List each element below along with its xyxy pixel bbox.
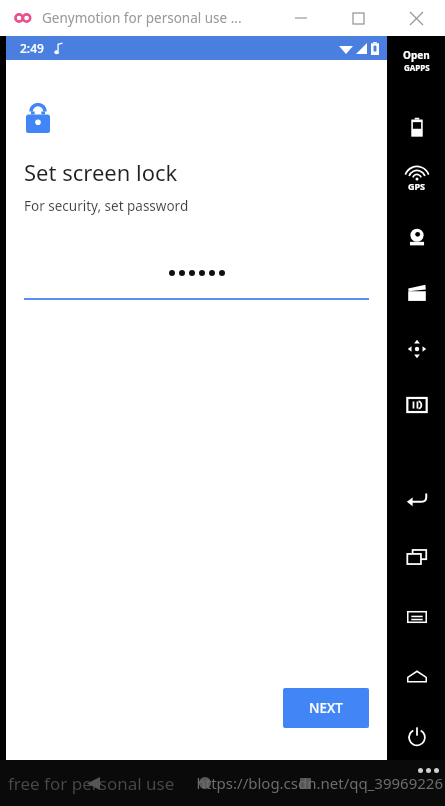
staticText: Open [403, 48, 430, 62]
staticText: GPS [408, 180, 426, 192]
button[interactable]: Maximize [329, 0, 387, 36]
button[interactable]: Battery [400, 110, 434, 144]
staticText: 2:49 [20, 40, 44, 56]
button[interactable]: Camera [400, 220, 434, 254]
staticText: Genymotion for personal use ... [42, 9, 242, 27]
button[interactable]: Back [78, 768, 108, 798]
staticText: For security, set password [24, 197, 189, 215]
button[interactable]: Identifiers [400, 388, 434, 422]
button[interactable]: Close [387, 0, 445, 36]
staticText: https://blog.csdn.net/qq_39969226 [196, 773, 443, 793]
button[interactable]: Move [400, 332, 434, 366]
button[interactable]: Back [400, 480, 434, 514]
button[interactable] [24, 259, 369, 300]
button[interactable]: Home [190, 768, 220, 798]
button[interactable]: Recents [290, 768, 320, 798]
button[interactable]: Recents [400, 540, 434, 574]
staticText: NEXT [309, 699, 343, 717]
staticText: free for personal use [8, 772, 175, 795]
button[interactable]: Power [400, 720, 434, 754]
button[interactable]: NEXT [283, 688, 369, 728]
button[interactable]: GPS [407, 166, 427, 200]
button[interactable]: Record video [400, 276, 434, 310]
staticText: GAPPS [404, 62, 430, 73]
button[interactable]: Minimize [273, 0, 329, 36]
button[interactable]: Menu [400, 600, 434, 634]
button[interactable]: Open GAPPS [403, 48, 430, 90]
staticText: Set screen lock [24, 157, 178, 187]
button[interactable]: Home [400, 660, 434, 694]
